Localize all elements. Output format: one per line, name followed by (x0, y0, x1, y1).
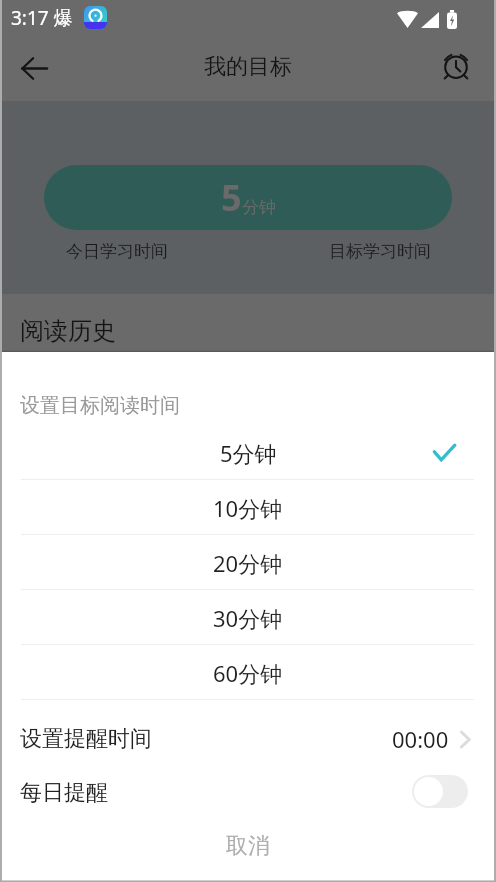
staticText: 分钟 (242, 197, 276, 218)
staticText: 60分钟 (213, 658, 283, 688)
staticText: 今日学习时间 (66, 241, 168, 262)
staticText: 设置目标阅读时间 (20, 393, 180, 418)
button[interactable]: 设置提醒时间 (0, 712, 496, 766)
button[interactable]: 20分钟 (0, 535, 496, 590)
button[interactable]: 60分钟 (0, 645, 496, 700)
button[interactable]: 5 (44, 165, 452, 230)
staticText: 5分钟 (220, 438, 277, 468)
button[interactable]: 30分钟 (0, 590, 496, 645)
button[interactable]: Alarm (434, 44, 478, 88)
staticText: 20分钟 (213, 548, 283, 578)
staticText: 目标学习时间 (329, 241, 431, 262)
staticText: 取消 (226, 832, 270, 860)
staticText: 10分钟 (213, 493, 283, 523)
staticText: 5 (221, 173, 242, 222)
button[interactable]: 取消 (0, 816, 496, 876)
staticText: 3:17 爆 (11, 5, 73, 31)
staticText: 阅读历史 (20, 316, 116, 346)
staticText: 我的目标 (204, 53, 292, 81)
staticText: 设置提醒时间 (20, 725, 152, 753)
staticText: 每日提醒 (20, 779, 108, 807)
button[interactable]: Back (12, 46, 56, 90)
staticText: 00:00 (392, 724, 449, 754)
button[interactable]: 10分钟 (0, 480, 496, 535)
button[interactable]: 5分钟 (0, 425, 496, 480)
staticText: 30分钟 (213, 603, 283, 633)
button[interactable]: 每日提醒 (0, 766, 496, 820)
